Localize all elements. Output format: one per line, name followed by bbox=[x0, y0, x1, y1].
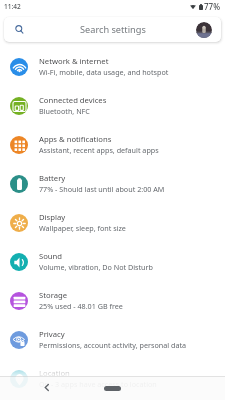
staticText: Connected devices bbox=[39, 95, 107, 105]
staticText: Network & internet bbox=[39, 56, 109, 66]
staticText: Bluetooth, NFC bbox=[39, 106, 90, 116]
button[interactable]: Privacy bbox=[0, 320, 225, 359]
button[interactable]: Sound bbox=[0, 242, 225, 281]
staticText: Permissions, account activity, personal … bbox=[39, 340, 187, 350]
staticText: 11:42 bbox=[4, 2, 21, 11]
staticText: Search settings bbox=[80, 23, 146, 36]
button[interactable]: Storage bbox=[0, 281, 225, 320]
button[interactable]: Back bbox=[40, 381, 52, 393]
staticText: Volume, vibration, Do Not Disturb bbox=[39, 262, 153, 272]
staticText: Privacy bbox=[39, 329, 65, 339]
staticText: Battery bbox=[39, 173, 66, 183]
button[interactable]: Home bbox=[104, 386, 121, 391]
button[interactable]: Connected devices bbox=[0, 86, 225, 125]
button[interactable]: Display bbox=[0, 203, 225, 242]
button[interactable]: Network & internet bbox=[0, 47, 225, 86]
button[interactable]: Location bbox=[0, 359, 225, 398]
staticText: Wallpaper, sleep, font size bbox=[39, 223, 126, 233]
staticText: 77% bbox=[204, 1, 220, 12]
staticText: Assistant, recent apps, default apps bbox=[39, 145, 159, 155]
staticText: 77% - Should last until about 2:00 AM bbox=[39, 184, 165, 194]
staticText: Location bbox=[39, 368, 70, 378]
staticText: On - 3 apps have access to location bbox=[39, 379, 157, 389]
staticText: Display bbox=[39, 212, 66, 222]
button[interactable]: Battery bbox=[0, 164, 225, 203]
staticText: 25% used - 48.01 GB free bbox=[39, 301, 123, 311]
staticText: Storage bbox=[39, 290, 68, 300]
staticText: Apps & notifications bbox=[39, 134, 112, 144]
staticText: Sound bbox=[39, 251, 63, 261]
staticText: Wi-Fi, mobile, data usage, and hotspot bbox=[39, 67, 169, 77]
button[interactable]: Search settings bbox=[4, 17, 221, 42]
button[interactable]: Apps & notifications bbox=[0, 125, 225, 164]
button[interactable]: Account bbox=[196, 22, 212, 38]
